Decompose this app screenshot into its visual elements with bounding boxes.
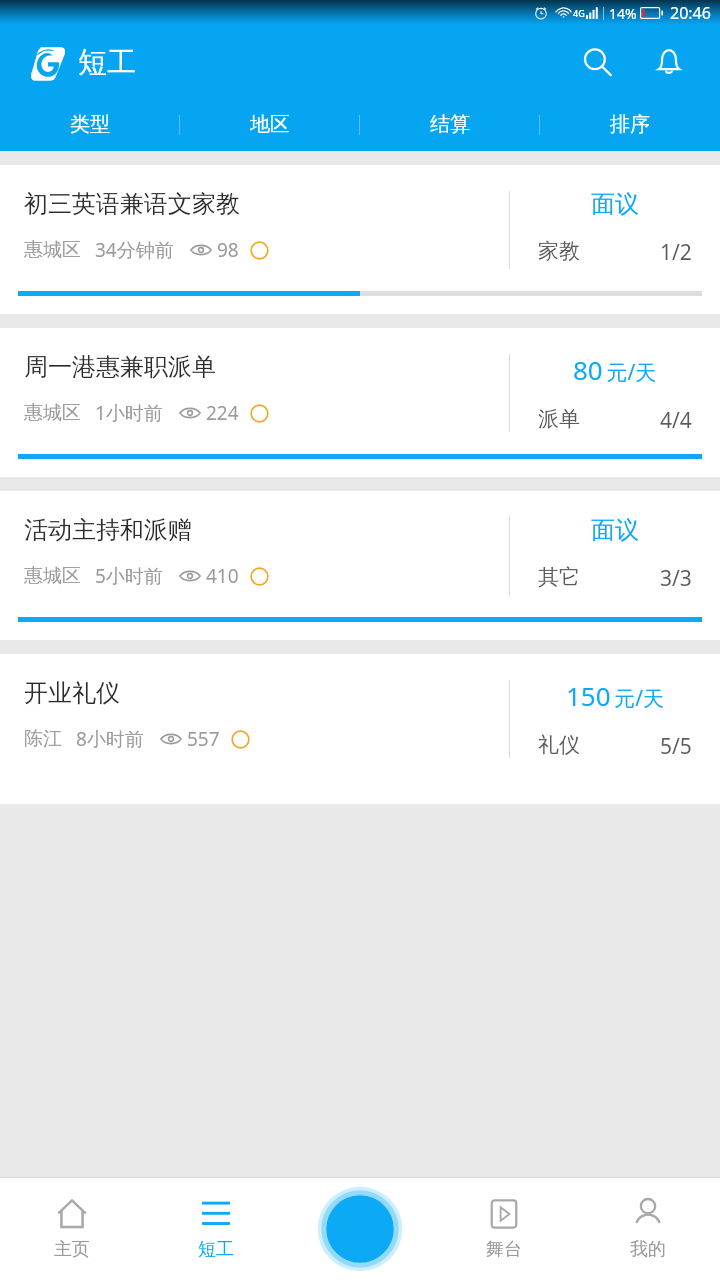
staticText: 活动主持和派赠 — [24, 515, 192, 545]
staticText: 家教 — [538, 238, 580, 264]
button[interactable]: 我的 — [576, 1177, 720, 1280]
staticText: 80 元/天 — [573, 352, 657, 387]
staticText: 5/5 — [660, 732, 692, 760]
staticText: 开业礼仪 — [24, 678, 120, 708]
staticText: 4/4 — [660, 406, 692, 434]
staticText: 20:46 — [670, 2, 711, 24]
staticText: 结算 — [430, 112, 470, 137]
staticText: 陈江 — [24, 727, 62, 751]
staticText: 类型 — [70, 112, 110, 137]
staticText: 我的 — [630, 1238, 666, 1261]
staticText: 惠城区 — [24, 401, 81, 425]
staticText: 舞台 — [486, 1238, 522, 1261]
button[interactable]: 主页 — [0, 1177, 144, 1280]
staticText: 其它 — [538, 564, 580, 590]
staticText: 惠城区 — [24, 564, 81, 588]
staticText: 34分钟前 — [95, 237, 174, 263]
button[interactable]: 结算 — [360, 99, 540, 150]
staticText: 初三英语兼语文家教 — [24, 189, 240, 219]
staticText: 14% — [609, 4, 637, 23]
staticText: 224 — [206, 400, 239, 426]
button[interactable]: 活动主持和派赠 — [0, 491, 720, 640]
staticText: 4G — [573, 7, 585, 19]
button[interactable]: 类型 — [0, 99, 180, 150]
staticText: 5小时前 — [95, 563, 163, 589]
staticText: 地区 — [250, 112, 290, 137]
staticText: 410 — [206, 563, 239, 589]
staticText: 150 元/天 — [566, 678, 665, 713]
button[interactable]: 周一港惠兼职派单 — [0, 328, 720, 477]
staticText: 短工 — [198, 1238, 234, 1261]
staticText: 8小时前 — [76, 726, 144, 752]
staticText: 主页 — [54, 1238, 90, 1261]
staticText: 3/3 — [660, 564, 692, 593]
button[interactable]: 排序 — [540, 99, 720, 150]
button[interactable]: 短工 — [144, 1177, 288, 1280]
staticText: 惠城区 — [24, 238, 81, 262]
button[interactable]: Publish — [288, 1177, 432, 1280]
staticText: 1小时前 — [95, 400, 163, 426]
staticText: 周一港惠兼职派单 — [24, 352, 216, 382]
button[interactable]: Notifications — [643, 36, 695, 88]
button[interactable]: 地区 — [180, 99, 360, 150]
staticText: 礼仪 — [538, 732, 580, 758]
staticText: 1/2 — [660, 238, 692, 267]
staticText: 557 — [187, 726, 220, 752]
staticText: 派单 — [538, 406, 580, 432]
button[interactable]: Search — [571, 36, 623, 88]
button[interactable]: 舞台 — [432, 1177, 576, 1280]
staticText: 面议 — [591, 515, 639, 545]
staticText: 98 — [217, 237, 239, 263]
button[interactable]: 初三英语兼语文家教 — [0, 165, 720, 314]
staticText: 短工 — [78, 44, 136, 81]
staticText: 面议 — [591, 189, 639, 219]
staticText: 排序 — [610, 112, 650, 137]
button[interactable]: 开业礼仪 — [0, 654, 720, 804]
